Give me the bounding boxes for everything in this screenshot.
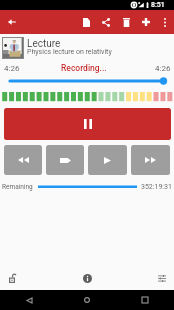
staticText: Lecture xyxy=(27,38,61,50)
button[interactable]: Play xyxy=(88,145,127,175)
button[interactable]: Add xyxy=(136,10,156,34)
button[interactable]: Lock xyxy=(3,266,21,290)
button[interactable]: Back xyxy=(0,290,58,310)
button[interactable]: Delete xyxy=(116,10,136,34)
staticText: 352:19:31 xyxy=(141,183,172,191)
button[interactable]: Fast forward xyxy=(131,145,170,175)
button[interactable]: More options xyxy=(155,10,174,34)
button[interactable]: Share xyxy=(96,10,116,34)
staticText: Remaining xyxy=(2,183,33,191)
staticText: 4:26 xyxy=(4,64,20,73)
staticText: 8:51 xyxy=(151,1,165,9)
button[interactable]: Pause recording xyxy=(4,108,171,140)
staticText: Recording... xyxy=(61,63,107,73)
button[interactable]: Info xyxy=(78,266,96,290)
button[interactable]: Home xyxy=(58,290,116,310)
button[interactable]: Recents xyxy=(116,290,174,310)
button[interactable]: Settings xyxy=(153,266,171,290)
button[interactable]: Back xyxy=(2,10,21,34)
staticText: Physics lecture on relativity xyxy=(27,48,112,56)
staticText: 4:26 xyxy=(155,64,171,73)
button[interactable]: Rewind xyxy=(4,145,42,175)
button[interactable]: Mark xyxy=(46,145,84,175)
button[interactable]: Save xyxy=(76,10,96,34)
